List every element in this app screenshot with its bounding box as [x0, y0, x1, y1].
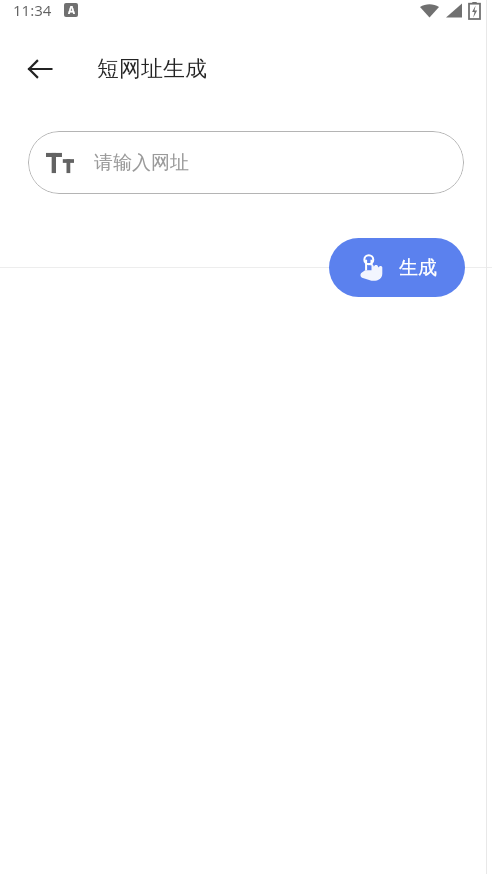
- button[interactable]: 请输入网址: [28, 131, 464, 194]
- button[interactable]: 生成: [329, 238, 465, 297]
- staticText: 生成: [399, 256, 437, 280]
- button[interactable]: Back: [14, 43, 66, 95]
- staticText: A: [68, 3, 75, 17]
- staticText: 请输入网址: [94, 151, 189, 175]
- staticText: 11:34: [13, 0, 52, 20]
- staticText: 短网址生成: [97, 55, 207, 83]
